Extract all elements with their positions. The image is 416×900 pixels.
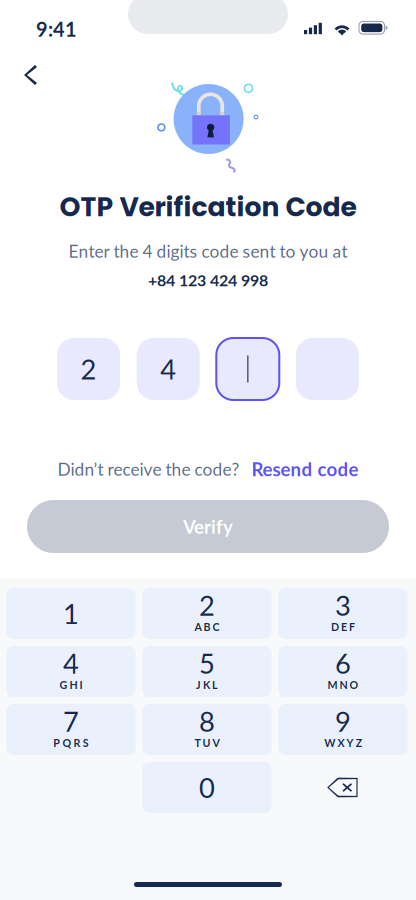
- button[interactable]: 0: [142, 762, 271, 813]
- button[interactable]: 4: [6, 646, 135, 697]
- button[interactable]: 1: [6, 588, 135, 639]
- staticText: 8: [199, 705, 215, 737]
- button[interactable]: 6: [278, 646, 407, 697]
- staticText: P: [53, 736, 60, 749]
- button[interactable]: Empty OTP digit: [296, 338, 359, 400]
- staticText: Verify: [183, 515, 233, 538]
- staticText: D: [331, 620, 339, 633]
- staticText: T: [194, 736, 200, 749]
- staticText: X: [337, 736, 344, 749]
- button[interactable]: OTP digit 4: [137, 338, 200, 400]
- staticText: Q: [62, 736, 71, 749]
- staticText: Enter the 4 digits code sent to you at: [68, 241, 347, 261]
- staticText: E: [341, 620, 347, 633]
- staticText: I: [80, 678, 83, 691]
- staticText: A: [194, 620, 201, 633]
- staticText: 6: [335, 647, 351, 679]
- staticText: R: [73, 736, 80, 749]
- staticText: U: [202, 736, 210, 749]
- staticText: C: [213, 620, 220, 633]
- staticText: B: [203, 620, 210, 633]
- button[interactable]: 2: [142, 588, 271, 639]
- staticText: 9:41: [36, 17, 77, 41]
- staticText: S: [83, 736, 89, 749]
- staticText: 2: [199, 589, 215, 621]
- staticText: 9: [335, 705, 351, 737]
- staticText: OTP Verification Code: [59, 188, 356, 226]
- staticText: M: [327, 678, 337, 691]
- button[interactable]: 5: [142, 646, 271, 697]
- staticText: N: [339, 678, 347, 691]
- staticText: K: [203, 678, 210, 691]
- staticText: 3: [335, 589, 351, 621]
- staticText: Didn’t receive the code?: [57, 459, 239, 479]
- staticText: H: [69, 678, 77, 691]
- staticText: W: [324, 736, 335, 749]
- staticText: J: [196, 678, 201, 691]
- button[interactable]: 9: [278, 704, 407, 755]
- staticText: L: [212, 678, 218, 691]
- button[interactable]: 3: [278, 588, 407, 639]
- staticText: 4: [160, 353, 176, 385]
- staticText: 4: [63, 647, 79, 679]
- staticText: G: [59, 678, 67, 691]
- button[interactable]: Delete: [278, 762, 407, 813]
- staticText: 7: [63, 705, 79, 737]
- staticText: 2: [81, 353, 97, 385]
- staticText: F: [349, 620, 355, 633]
- staticText: V: [213, 736, 220, 749]
- button[interactable]: Verify: [27, 500, 389, 553]
- button[interactable]: Empty OTP digit: [216, 338, 279, 400]
- staticText: 0: [199, 771, 215, 804]
- staticText: Resend code: [251, 458, 358, 480]
- staticText: Y: [347, 736, 354, 749]
- button[interactable]: 8: [142, 704, 271, 755]
- button[interactable]: 7: [6, 704, 135, 755]
- staticText: O: [350, 678, 359, 691]
- button[interactable]: Resend code: [251, 458, 358, 480]
- staticText: 5: [199, 647, 215, 679]
- staticText: +84 123 424 998: [148, 270, 268, 290]
- staticText: 1: [63, 597, 79, 630]
- staticText: Z: [356, 736, 362, 749]
- button[interactable]: Back: [13, 58, 47, 92]
- button[interactable]: OTP digit 2: [57, 338, 120, 400]
